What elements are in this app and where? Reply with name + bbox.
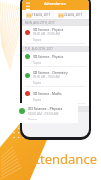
staticText: 18 AUG, 2017 <box>32 13 51 17</box>
button[interactable]: 24 AUG, 2017 <box>59 11 84 18</box>
staticText: 24 AUG, 2017 <box>64 13 83 17</box>
button[interactable]: XII Science - Chemistry <box>22 69 89 89</box>
staticText: 09:00 AM - 10:00 AM <box>33 75 60 79</box>
staticText: XII Science - Physics <box>33 28 64 32</box>
staticText: TUE, AUG 22TH, 2017 <box>25 47 53 51</box>
button[interactable]: Menu <box>25 0 31 6</box>
button[interactable]: 18 AUG, 2017 <box>27 11 52 18</box>
button[interactable]: XII Science - Physics <box>16 103 78 123</box>
staticText: 08:00 AM - 09:00 AM <box>28 112 59 116</box>
staticText: WED, AUG 23TH, 2017 <box>25 107 54 111</box>
button[interactable]: XII Science - Physics <box>22 52 89 69</box>
staticText: Topics <box>33 38 42 42</box>
button[interactable]: Menu <box>22 0 89 10</box>
button[interactable]: XII Science - Maths <box>22 89 89 106</box>
staticText: XII Science - Chemistry <box>33 71 68 75</box>
staticText: XII Science - Physics <box>28 106 63 111</box>
staticText: Topics <box>33 61 42 65</box>
button[interactable]: XII Science - Physics <box>22 26 89 46</box>
staticText: Topics <box>33 81 42 85</box>
staticText: 08:00 AM - 09:00 AM <box>33 32 60 36</box>
staticText: Attendance <box>27 150 97 168</box>
staticText: XII Science - Physics <box>33 55 64 59</box>
staticText: Topics <box>28 118 38 120</box>
staticText: Topics <box>33 98 42 102</box>
staticText: XII Science - Maths <box>33 92 62 96</box>
staticText: MON, AUG 21TH, 2017 <box>25 21 55 25</box>
staticText: Attendance <box>44 1 67 6</box>
